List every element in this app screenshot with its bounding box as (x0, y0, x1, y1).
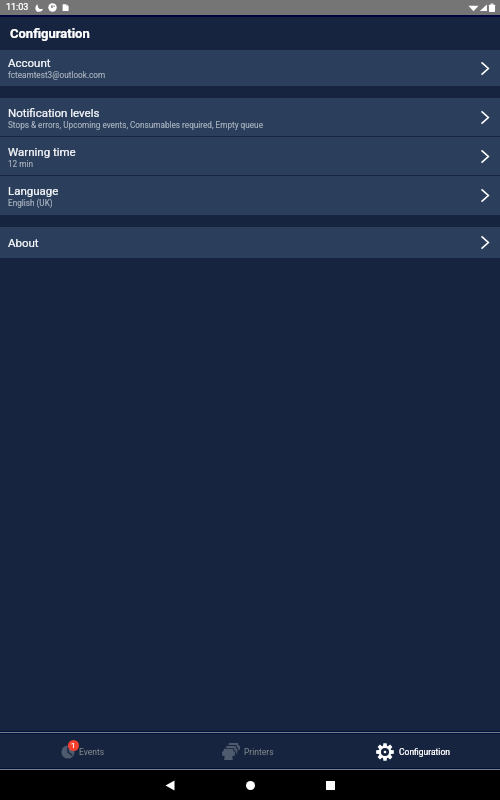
staticText: fcteamtest3@outlook.com (8, 70, 106, 80)
button[interactable]: About (0, 227, 500, 258)
staticText: Configuration (10, 26, 90, 41)
staticText: Language (8, 184, 59, 197)
staticText: English (UK) (8, 198, 53, 208)
button[interactable]: Warning time (0, 137, 500, 176)
button[interactable]: Notification levels (0, 98, 500, 137)
button[interactable]: Account (0, 50, 500, 86)
staticText: Notification levels (8, 106, 100, 119)
staticText: 12 min (8, 159, 33, 169)
staticText: Printers (244, 747, 274, 757)
staticText: Configuration (399, 747, 450, 757)
button[interactable]: Recent apps (290, 770, 370, 800)
button[interactable]: Language (0, 176, 500, 215)
button[interactable]: Configuration (330, 743, 495, 761)
staticText: 1 (71, 741, 76, 750)
button[interactable]: 1 (0, 745, 165, 759)
staticText: 11:03 (6, 2, 29, 13)
button[interactable]: Home (210, 770, 290, 800)
staticText: Stops & errors, Upcoming events, Consuma… (8, 120, 263, 130)
staticText: Warning time (8, 145, 76, 158)
staticText: About (8, 236, 39, 249)
staticText: Account (8, 56, 51, 69)
button[interactable]: Printers (165, 743, 330, 760)
staticText: Events (79, 747, 105, 757)
button[interactable]: Back (130, 770, 210, 800)
